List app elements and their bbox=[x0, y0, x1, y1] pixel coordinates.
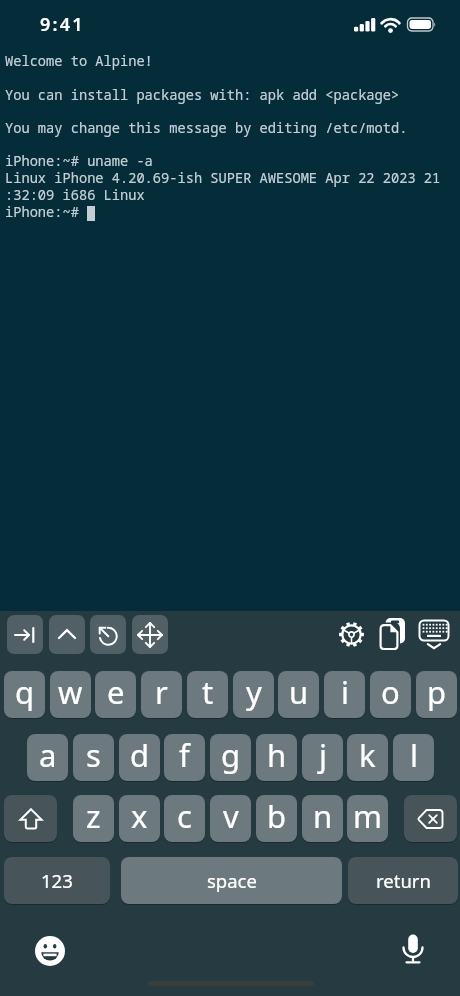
button[interactable] bbox=[398, 931, 428, 967]
button[interactable]: t bbox=[187, 671, 228, 718]
button[interactable]: z bbox=[73, 795, 114, 842]
button[interactable] bbox=[417, 619, 451, 649]
staticText: Linux iPhone 4.20.69-ish SUPER AWESOME A… bbox=[5, 168, 441, 187]
staticText: You can install packages with: apk add <… bbox=[5, 85, 400, 104]
button[interactable]: return bbox=[348, 857, 458, 904]
button[interactable] bbox=[33, 934, 66, 967]
button[interactable]: l bbox=[393, 734, 434, 781]
button[interactable]: s bbox=[73, 734, 114, 781]
button[interactable]: e bbox=[95, 671, 136, 718]
button[interactable]: x bbox=[119, 795, 160, 842]
button[interactable]: g bbox=[210, 734, 251, 781]
staticText: 9:41 bbox=[40, 12, 85, 37]
staticText: w bbox=[58, 671, 83, 713]
button[interactable]: a bbox=[27, 734, 68, 781]
button[interactable]: b bbox=[256, 795, 297, 842]
button[interactable]: k bbox=[347, 734, 388, 781]
staticText: i bbox=[341, 671, 349, 713]
staticText: q bbox=[15, 671, 35, 713]
staticText: u bbox=[289, 671, 309, 713]
button[interactable] bbox=[336, 619, 366, 649]
button[interactable]: n bbox=[302, 795, 343, 842]
staticText: n bbox=[313, 795, 333, 837]
staticText: x bbox=[131, 795, 148, 837]
button[interactable] bbox=[379, 616, 409, 652]
staticText: c bbox=[177, 795, 192, 837]
button[interactable]: v bbox=[210, 795, 251, 842]
staticText: space bbox=[207, 868, 257, 893]
staticText: z bbox=[86, 795, 101, 837]
staticText: j bbox=[319, 734, 327, 776]
button[interactable]: f bbox=[164, 734, 205, 781]
button[interactable] bbox=[404, 795, 457, 842]
staticText: l bbox=[410, 734, 418, 776]
button[interactable]: y bbox=[233, 671, 274, 718]
button[interactable]: m bbox=[347, 795, 388, 842]
staticText: v bbox=[223, 795, 239, 837]
staticText: return bbox=[376, 868, 431, 893]
staticText: e bbox=[107, 671, 125, 713]
staticText: r bbox=[155, 671, 168, 713]
button[interactable]: w bbox=[50, 671, 91, 718]
staticText: iPhone:~# bbox=[5, 202, 88, 221]
button[interactable]: o bbox=[370, 671, 411, 718]
staticText: :32:09 i686 Linux bbox=[5, 185, 145, 204]
staticText: h bbox=[267, 734, 287, 776]
button[interactable] bbox=[132, 615, 168, 654]
button[interactable] bbox=[49, 615, 85, 654]
staticText: m bbox=[353, 795, 382, 837]
button[interactable]: p bbox=[416, 671, 457, 718]
staticText: b bbox=[267, 795, 287, 837]
staticText: g bbox=[221, 734, 241, 776]
staticText: s bbox=[86, 734, 101, 776]
button[interactable]: u bbox=[278, 671, 319, 718]
button[interactable]: j bbox=[302, 734, 343, 781]
button[interactable]: r bbox=[141, 671, 182, 718]
button[interactable]: d bbox=[119, 734, 160, 781]
button[interactable]: h bbox=[256, 734, 297, 781]
staticText: 123 bbox=[41, 868, 73, 893]
staticText: a bbox=[39, 734, 57, 776]
button[interactable] bbox=[7, 615, 43, 654]
button[interactable]: i bbox=[324, 671, 365, 718]
button[interactable]: 123 bbox=[4, 857, 110, 904]
button[interactable]: space bbox=[121, 857, 342, 904]
button[interactable]: c bbox=[164, 795, 205, 842]
staticText: t bbox=[202, 671, 214, 713]
staticText: d bbox=[130, 734, 150, 776]
staticText: f bbox=[179, 734, 190, 776]
button[interactable] bbox=[90, 615, 126, 654]
staticText: y bbox=[246, 671, 262, 713]
button[interactable] bbox=[4, 795, 57, 842]
staticText: Welcome to Alpine! bbox=[5, 51, 153, 70]
button[interactable]: q bbox=[4, 671, 45, 718]
staticText: p bbox=[427, 671, 447, 713]
staticText: iPhone:~# uname -a bbox=[5, 151, 153, 170]
staticText: You may change this message by editing /… bbox=[5, 118, 408, 137]
staticText: k bbox=[359, 734, 376, 776]
staticText: o bbox=[381, 671, 400, 713]
